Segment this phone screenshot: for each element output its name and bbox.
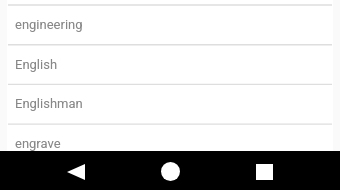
staticText: engrave [15,136,61,151]
button[interactable]: Recent apps [236,152,292,190]
button[interactable]: English [0,45,340,85]
button[interactable]: Englishman [0,84,340,124]
button[interactable]: engineering [0,5,340,45]
staticText: English [15,57,58,72]
button[interactable]: Back [48,152,104,190]
staticText: engineering [15,17,83,32]
button[interactable]: Home [142,152,198,190]
staticText: Englishman [15,96,83,111]
button[interactable]: engrave [0,124,340,164]
